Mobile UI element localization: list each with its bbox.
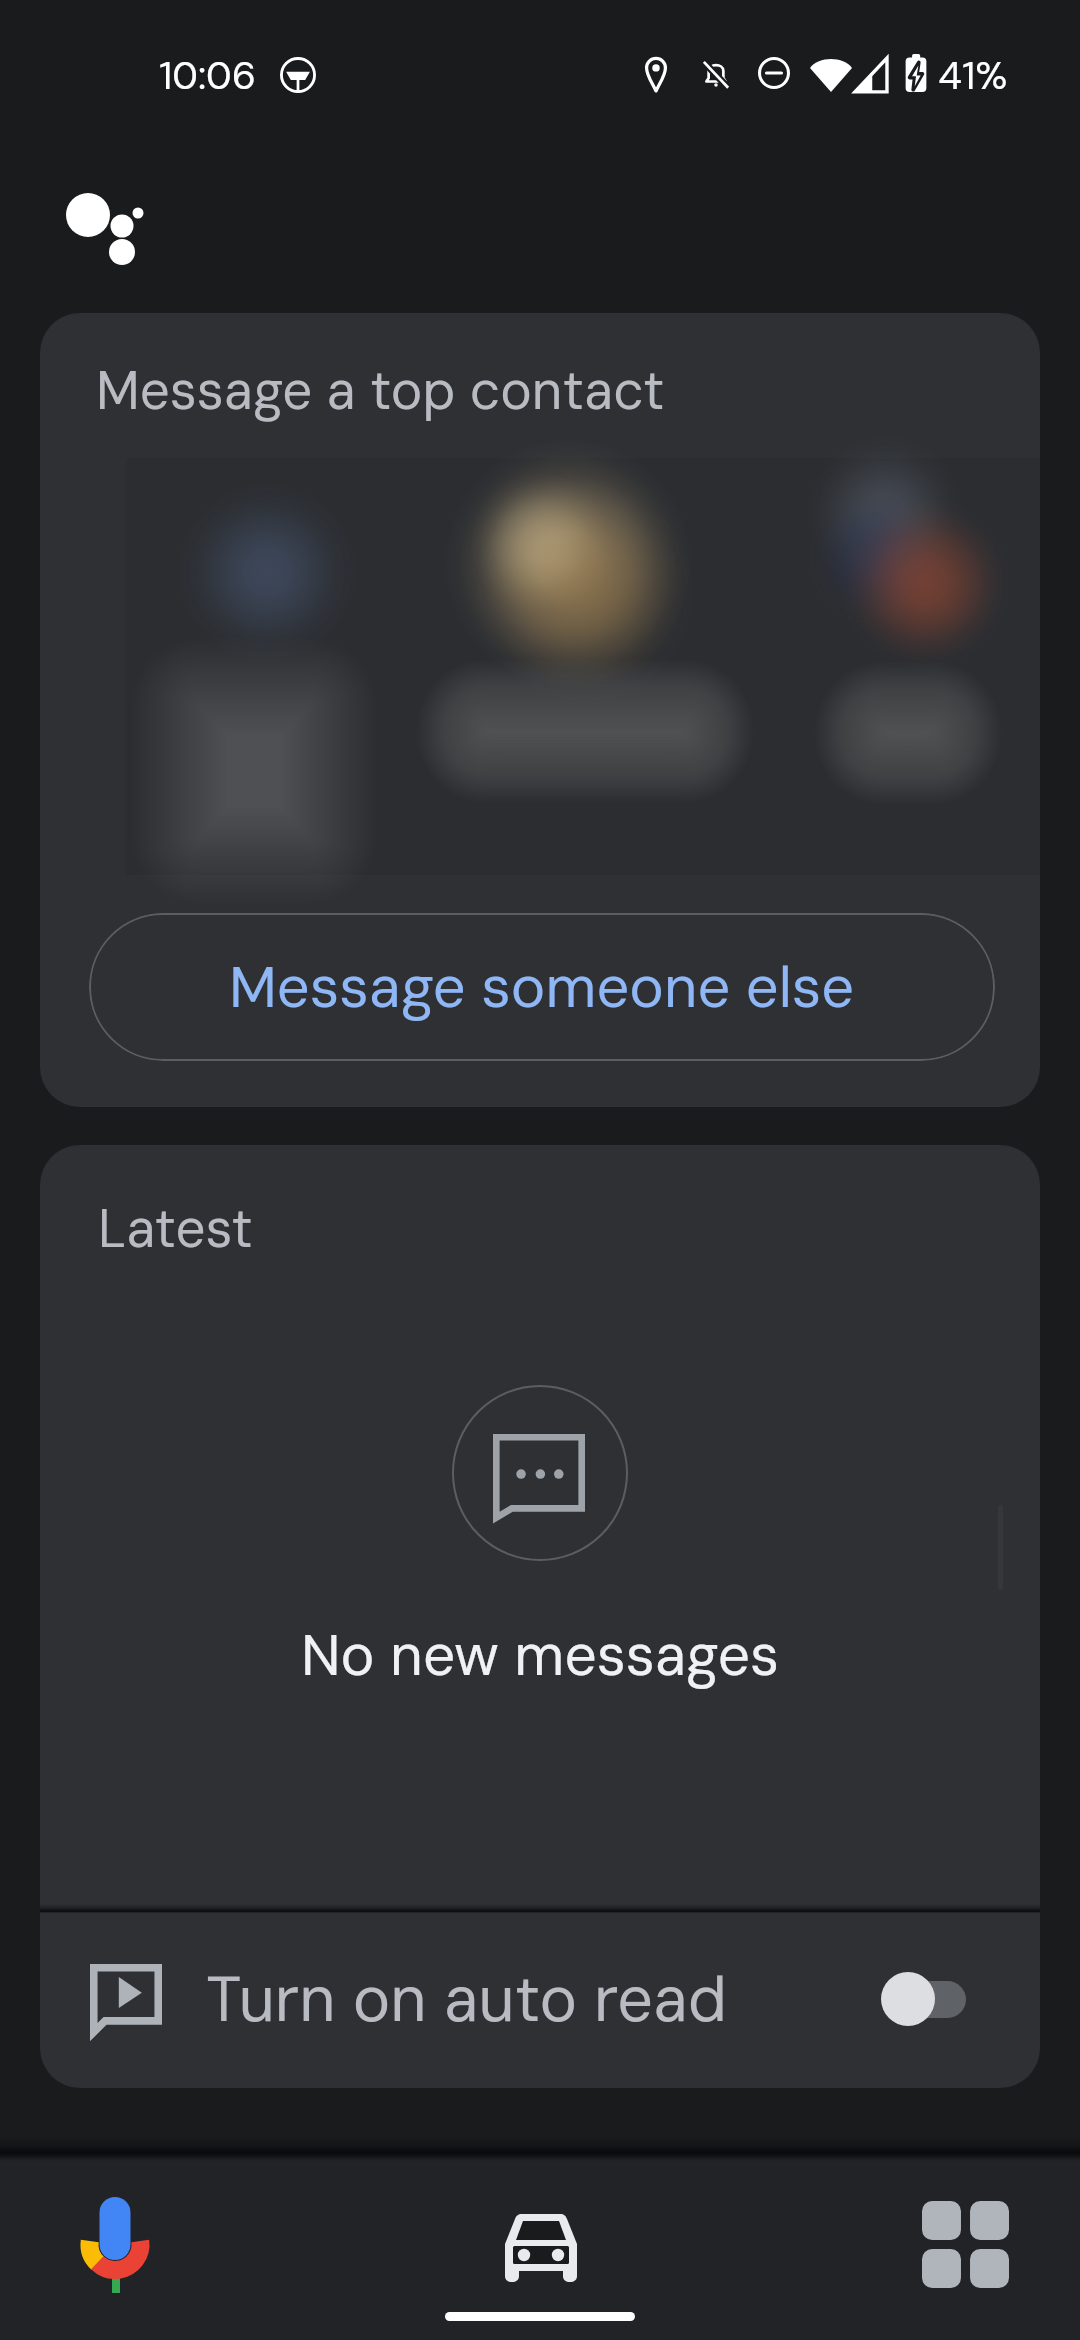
- staticText: Message a top contact: [96, 356, 665, 425]
- staticText: No new messages: [301, 1618, 780, 1692]
- button[interactable]: Turn on auto read: [40, 1913, 1040, 2088]
- staticText: Turn on auto read: [206, 1959, 727, 2041]
- staticText: Latest: [98, 1194, 253, 1263]
- staticText: 41%: [938, 50, 1008, 101]
- button[interactable]: Apps: [897, 2176, 1033, 2312]
- button[interactable]: Message someone else: [89, 913, 995, 1061]
- staticText: Message someone else: [229, 949, 855, 1025]
- button[interactable]: Microphone: [47, 2177, 183, 2313]
- other: Assistant: [60, 185, 160, 285]
- staticText: 10:06: [159, 50, 257, 101]
- button[interactable]: Driving mode: [473, 2180, 609, 2316]
